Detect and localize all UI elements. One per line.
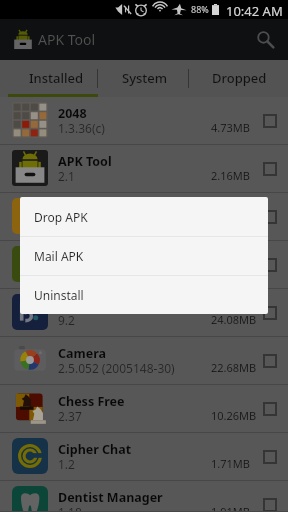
staticText: Installed [29, 69, 84, 87]
button[interactable]: Select app [263, 162, 277, 176]
button[interactable]: Select app [263, 210, 277, 224]
staticText: 88% [191, 3, 209, 15]
button[interactable]: Cipher Chat [0, 433, 288, 481]
staticText: System [122, 69, 168, 87]
button[interactable]: Dropped [189, 60, 288, 97]
button[interactable]: Uninstall [20, 276, 268, 314]
staticText: 6.1 [58, 264, 75, 280]
staticText: 24.08MB [211, 312, 257, 327]
staticText: Dentist Manager [58, 489, 163, 506]
staticText: Uninstall [34, 287, 84, 303]
staticText: APK Tool [58, 153, 112, 170]
staticText: 22.68MB [211, 360, 257, 375]
button[interactable]: Booking [0, 289, 288, 337]
button[interactable]: 2048 [0, 97, 288, 145]
staticText: Camera [58, 345, 106, 362]
button[interactable]: Select app [263, 498, 277, 512]
staticText: 2.5.052 (2005148-30) [58, 360, 175, 376]
button[interactable]: Select app [263, 306, 277, 320]
button[interactable]: Bubble Level [0, 193, 288, 241]
button[interactable]: Dentist Manager [0, 481, 288, 512]
staticText: Calculator [58, 249, 122, 266]
staticText: 1.6 [58, 216, 75, 232]
button[interactable]: Select app [263, 114, 277, 128]
staticText: 1.71MB [211, 456, 250, 471]
staticText: Dropped [212, 69, 267, 87]
staticText: Drop APK [34, 209, 88, 225]
staticText: 10:42 AM [226, 2, 283, 20]
button[interactable]: Search [247, 19, 288, 60]
staticText: 2.16MB [211, 168, 250, 183]
button[interactable]: System [98, 60, 189, 97]
button[interactable]: Select app [263, 258, 277, 272]
staticText: Mail APK [34, 248, 84, 264]
button[interactable]: APK Tool [0, 145, 288, 193]
button[interactable]: Select app [263, 402, 277, 416]
button[interactable]: Drop APK [20, 197, 268, 236]
staticText: 2.1 [58, 168, 75, 184]
staticText: APK Tool [38, 30, 96, 49]
staticText: 1.91MB [211, 504, 250, 512]
staticText: Bubble Level [58, 201, 138, 218]
button[interactable]: Camera [0, 337, 288, 385]
staticText: 9.2 [58, 312, 75, 328]
staticText: 1.3.36(c) [58, 120, 105, 136]
staticText: 1.2 [58, 456, 75, 472]
staticText: 2048 [58, 105, 87, 122]
staticText: Chess Free [58, 393, 125, 410]
button[interactable]: Chess Free [0, 385, 288, 433]
button[interactable]: Installed [0, 60, 98, 97]
staticText: 10.26MB [211, 408, 257, 423]
button[interactable]: Calculator [0, 241, 288, 289]
staticText: 1.18 [58, 504, 82, 512]
staticText: Booking [58, 297, 110, 314]
button[interactable]: Select app [263, 450, 277, 464]
staticText: 2.37 [58, 408, 82, 424]
button[interactable]: Mail APK [20, 237, 268, 275]
staticText: 4.73MB [211, 120, 250, 135]
staticText: 3.36MB [211, 264, 250, 279]
button[interactable]: Select app [263, 354, 277, 368]
staticText: Cipher Chat [58, 441, 132, 458]
